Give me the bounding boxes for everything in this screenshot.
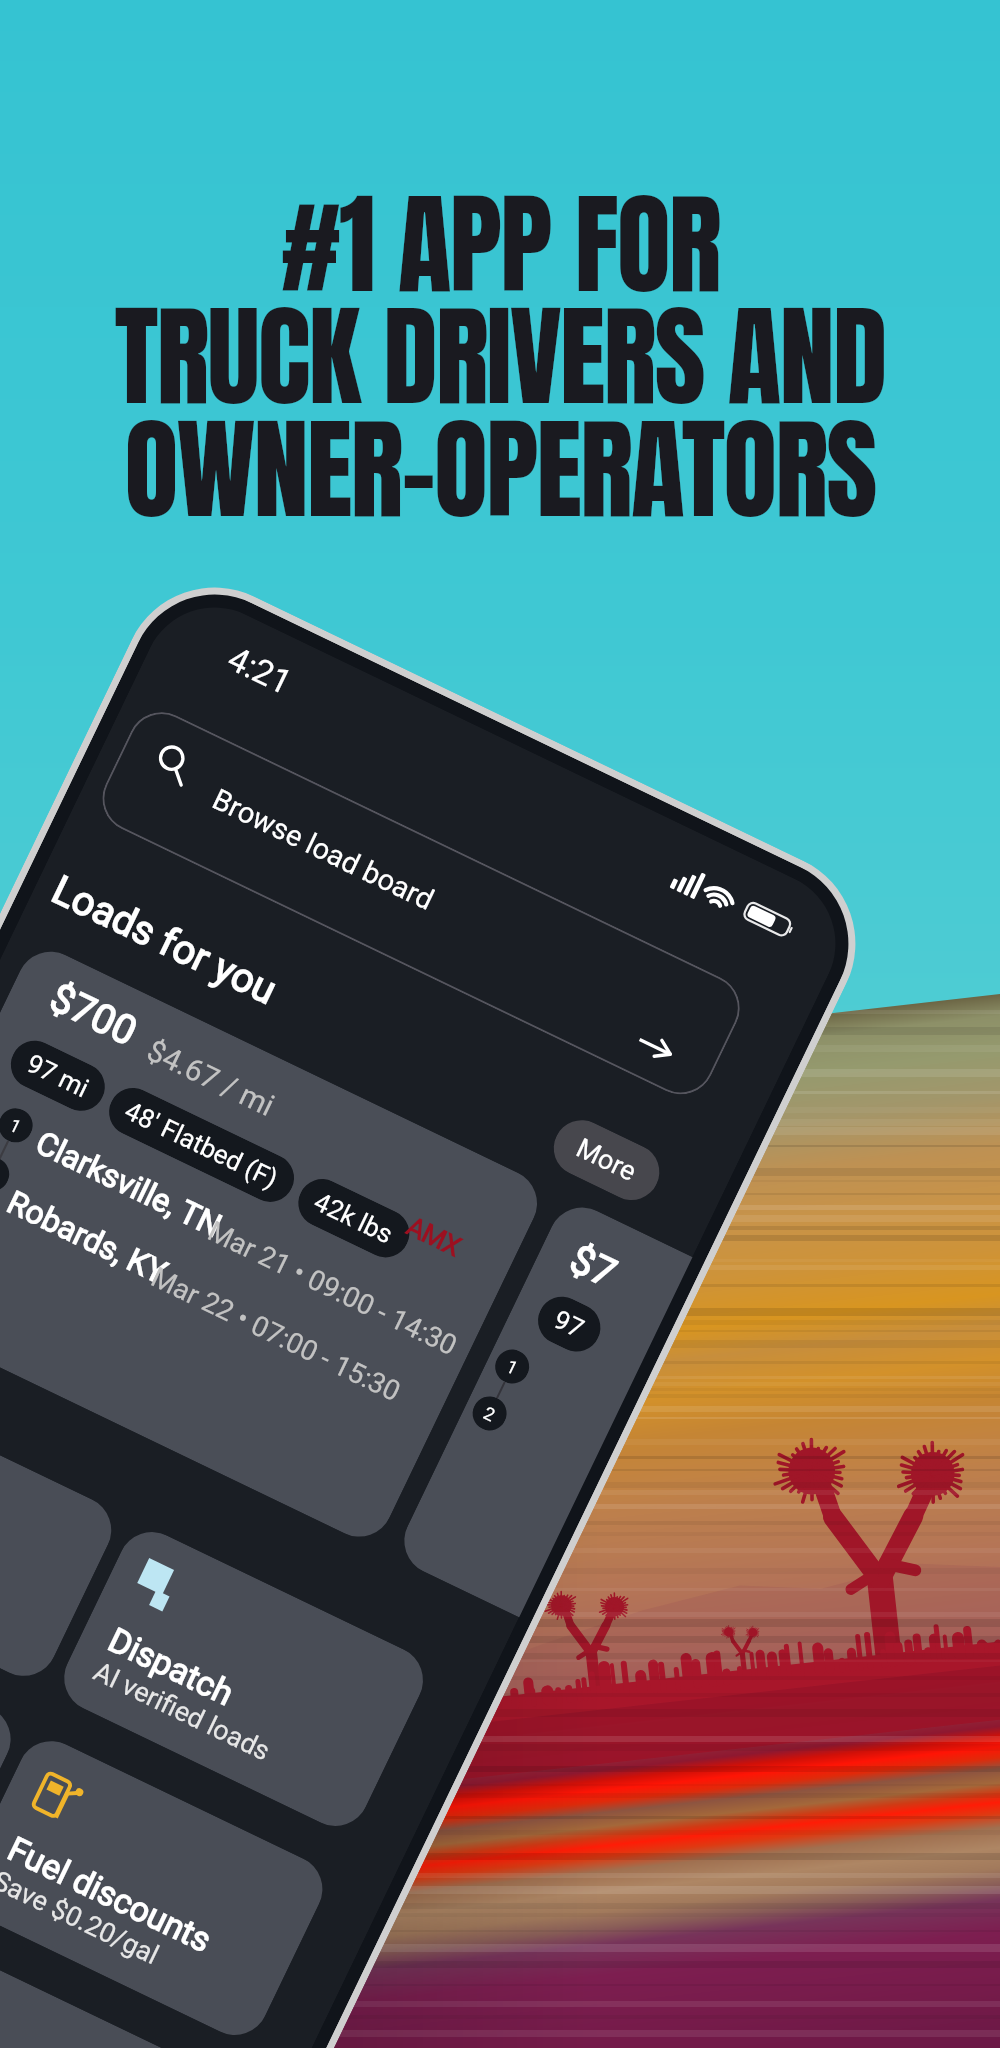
- button[interactable]: Insurance: [0, 1939, 233, 2048]
- staticText: 1: [503, 1355, 522, 1379]
- button[interactable]: Browse load board: [91, 701, 751, 1106]
- staticText: 1: [6, 1114, 25, 1138]
- staticText: 4:21: [222, 638, 298, 703]
- staticText: Mar 22 • 07:00 - 15:30: [146, 1260, 406, 1409]
- button[interactable]: Factoring: [0, 1580, 22, 1896]
- staticText: Loads for you: [45, 866, 284, 1014]
- staticText: Fuel discounts: [2, 1828, 218, 1960]
- staticText: Save $0.20/gal: [0, 1864, 164, 1971]
- staticText: #1 APP FOR TRUCK DRIVERS AND OWNER-OPERA…: [114, 160, 886, 553]
- staticText: Dispatch: [102, 1619, 240, 1714]
- staticText: 42k lbs: [309, 1186, 398, 1250]
- staticText: AMX: [402, 1210, 466, 1263]
- staticText: 97 mi: [22, 1048, 94, 1103]
- button[interactable]: $700: [0, 940, 548, 1548]
- button[interactable]: Fuel discounts: [0, 1730, 334, 2046]
- button[interactable]: Dispatch: [53, 1521, 434, 1837]
- staticText: Clarksville, TN: [30, 1124, 228, 1245]
- staticText: 2: [480, 1402, 499, 1426]
- staticText: Mar 21 • 09:00 - 14:30: [203, 1214, 463, 1363]
- button[interactable]: Pay: [0, 1371, 123, 1687]
- staticText: $7: [563, 1235, 624, 1297]
- button[interactable]: 42k lbs: [290, 1171, 417, 1265]
- staticText: Robards, KY: [1, 1183, 173, 1292]
- staticText: $4.67 / mi: [142, 1032, 280, 1123]
- button[interactable]: 48' Flatbed (F): [101, 1080, 302, 1210]
- button[interactable]: $7: [393, 1196, 692, 1617]
- button[interactable]: More: [544, 1111, 669, 1209]
- staticText: $700: [43, 974, 144, 1055]
- staticText: AI verified loads: [88, 1655, 275, 1767]
- button[interactable]: 97 mi: [3, 1033, 113, 1119]
- button[interactable]: 97: [530, 1289, 608, 1360]
- staticText: More: [571, 1132, 642, 1188]
- other: Signal, wifi and battery status: [669, 860, 803, 945]
- staticText: 48' Flatbed (F): [120, 1095, 283, 1194]
- staticText: Browse load board: [207, 782, 439, 917]
- staticText: 97: [549, 1304, 589, 1344]
